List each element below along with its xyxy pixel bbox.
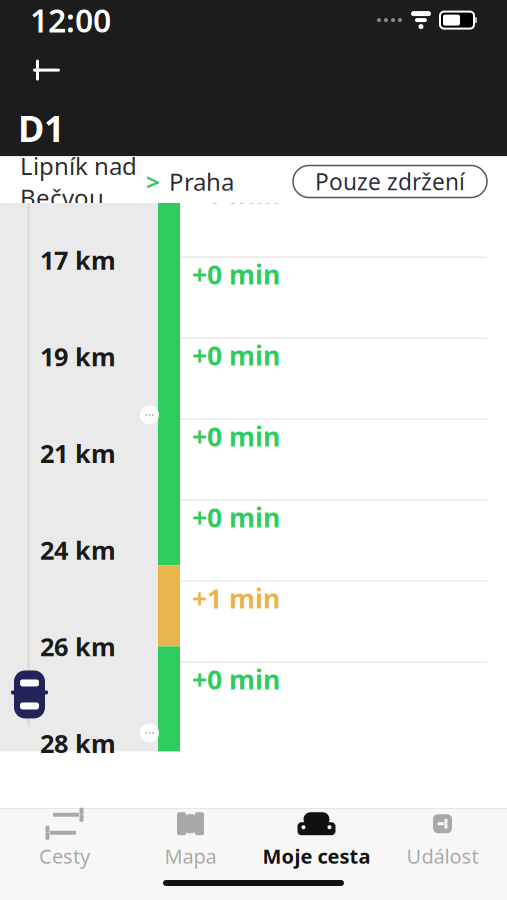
button[interactable]: Událost [379,809,505,871]
staticText: +0 min [192,499,280,535]
button[interactable]: Cesty [1,809,127,871]
staticText: Mapa [164,843,216,869]
staticText: Moje cesta [262,843,370,869]
staticText: Událost [406,843,478,869]
staticText: Pouze zdržení [315,166,465,196]
staticText: Cesty [39,843,90,869]
button[interactable]: Back [14,44,76,96]
staticText: 16 km [40,146,116,180]
button[interactable]: Pouze zdržení [293,165,487,197]
staticText: 17 km [40,243,116,277]
staticText: +0 min [192,175,280,211]
staticText: 12:00 [30,0,111,41]
staticText: 21 km [40,436,116,470]
staticText: +0 min [192,661,280,697]
staticText: 24 km [40,533,116,567]
staticText: +0 min [192,256,280,292]
button[interactable]: Moje cesta [253,809,379,871]
staticText: 26 km [40,630,116,663]
button[interactable]: Mapa [127,809,253,871]
staticText: +0 min [192,418,280,454]
staticText: D1 [18,104,65,152]
staticText: +1 min [192,580,280,616]
button[interactable]: Lipník nad Bečvou [20,150,234,213]
staticText: 19 km [40,340,116,373]
staticText: +0 min [192,337,280,373]
staticText: Praha [169,166,234,197]
staticText: > [146,166,160,197]
staticText: 30 km [40,823,116,856]
staticText: 28 km [40,726,116,760]
staticText: Lipník nad Bečvou [20,150,137,213]
